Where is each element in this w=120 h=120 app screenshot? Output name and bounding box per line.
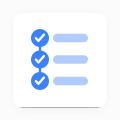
button[interactable]: Task completed [0,0,120,120]
button[interactable]: Task completed [0,0,120,120]
button[interactable]: Task completed [0,0,120,120]
